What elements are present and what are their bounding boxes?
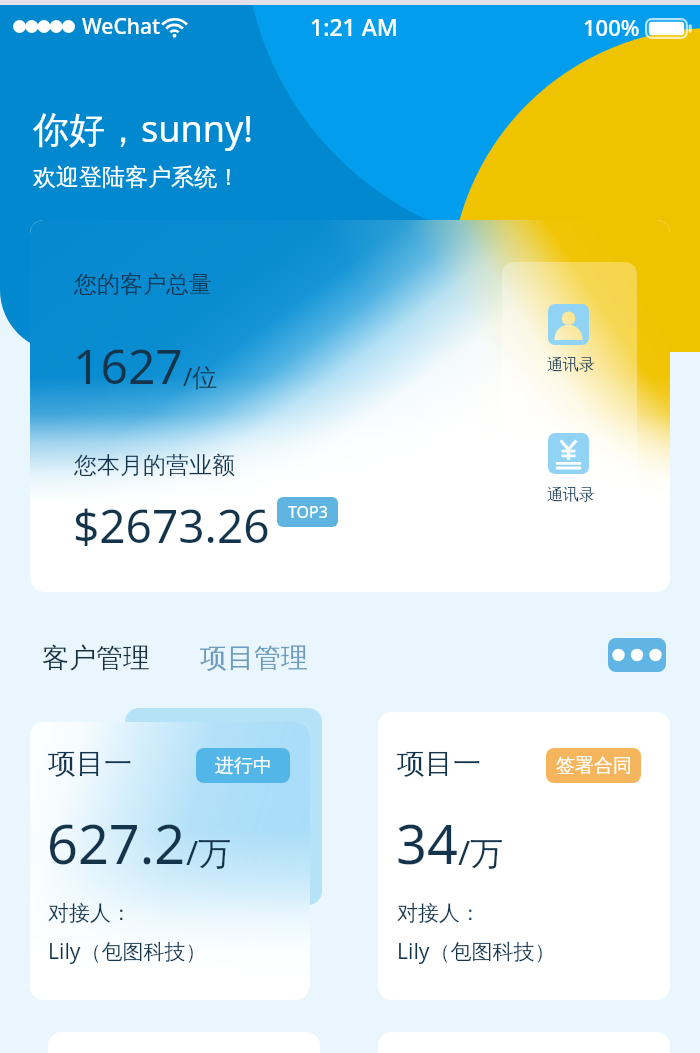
staticText: 客户管理 — [42, 641, 150, 675]
staticText: 你好，sunny! — [33, 104, 254, 153]
staticText: /位 — [183, 359, 218, 393]
staticText: 对接人： — [397, 900, 481, 926]
staticText: 您本月的营业额 — [74, 451, 235, 480]
staticText: Lily（包图科技） — [48, 937, 207, 966]
staticText: 项目一 — [397, 746, 481, 781]
staticText: 欢迎登陆客户系统！ — [33, 163, 240, 192]
staticText: WeChat — [82, 12, 160, 41]
staticText: /万 — [458, 830, 504, 875]
staticText: 627.2 — [47, 806, 186, 880]
staticText: $2673.26 — [73, 494, 270, 557]
staticText: TOP3 — [288, 501, 328, 523]
button[interactable]: 签署合同 — [546, 748, 641, 783]
button[interactable]: 通讯录 — [548, 304, 589, 345]
staticText: 项目一 — [48, 746, 132, 781]
staticText: 1:21 AM — [310, 11, 398, 42]
staticText: Lily（包图科技） — [397, 937, 556, 966]
button[interactable]: 项目管理 — [200, 641, 308, 675]
staticText: 签署合同 — [556, 754, 632, 778]
staticText: 1627 — [73, 333, 183, 398]
staticText: 通讯录 — [547, 485, 595, 505]
staticText: 项目管理 — [200, 641, 308, 675]
staticText: 您的客户总量 — [74, 270, 212, 299]
button[interactable]: 更多 — [608, 638, 666, 672]
button[interactable]: 通讯录 — [502, 262, 637, 555]
button[interactable]: 项目一 — [30, 722, 310, 1000]
button[interactable]: 项目一 — [378, 712, 670, 1000]
button[interactable]: 进行中 — [196, 748, 290, 783]
staticText: /万 — [186, 830, 232, 875]
button[interactable]: 账单 — [548, 433, 589, 474]
button[interactable]: 客户管理 — [42, 641, 150, 675]
button[interactable]: 通讯录 — [30, 220, 670, 592]
staticText: 34 — [396, 806, 458, 880]
staticText: 通讯录 — [547, 355, 595, 375]
button[interactable]: TOP3 — [277, 497, 338, 527]
staticText: 100% — [583, 12, 640, 42]
staticText: 对接人： — [48, 900, 132, 926]
staticText: 进行中 — [215, 754, 272, 778]
